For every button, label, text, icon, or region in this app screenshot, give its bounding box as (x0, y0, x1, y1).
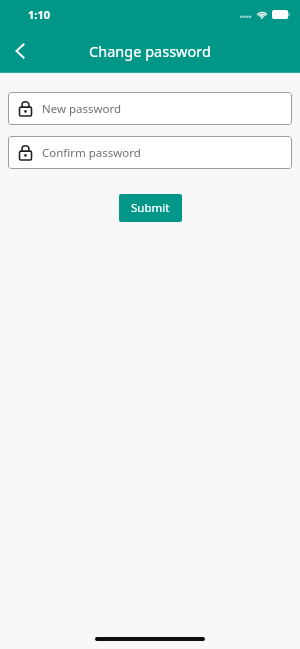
staticText: New password (42, 101, 122, 117)
staticText: Confirm password (42, 145, 141, 161)
staticText: 1:10 (28, 7, 50, 22)
button[interactable]: New password (8, 92, 292, 125)
staticText: Change password (89, 41, 211, 61)
button[interactable]: Confirm password (8, 136, 292, 169)
staticText: Submit (131, 200, 170, 216)
button[interactable]: Submit (119, 194, 182, 222)
button[interactable]: Back (0, 31, 40, 71)
